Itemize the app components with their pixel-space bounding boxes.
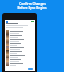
staticText: Before Sync Begins [17,6,47,10]
button[interactable] [5,30,35,34]
button[interactable] [5,50,35,54]
button[interactable] [5,62,35,66]
staticText: Confirm Changes [19,2,46,6]
button[interactable] [5,54,35,58]
button[interactable]: Confirm [28,68,33,70]
button[interactable] [5,58,35,62]
button[interactable] [5,38,35,42]
button[interactable] [5,46,35,50]
button[interactable] [5,34,35,38]
button[interactable] [5,42,35,46]
